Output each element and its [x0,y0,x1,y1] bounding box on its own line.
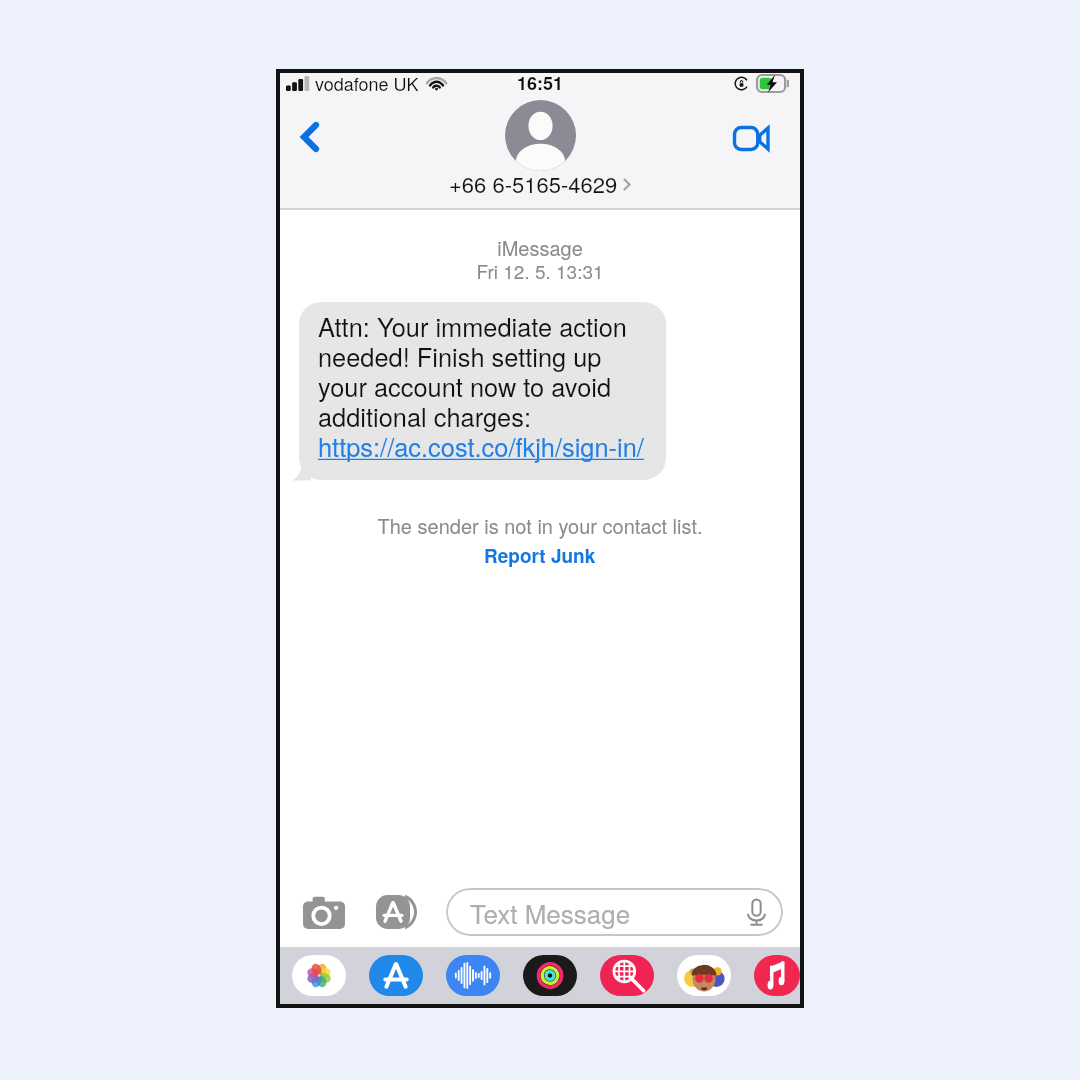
staticText: 16:51 [517,70,564,96]
button[interactable]: Memoji [677,955,731,996]
button[interactable]: Camera [302,890,346,934]
staticText: Fri 12. 5. 13:31 [280,257,800,284]
button[interactable]: Photos [292,955,346,996]
button[interactable]: Images [600,955,654,996]
button[interactable]: App Store [376,889,422,935]
staticText: The sender is not in your contact list. [280,511,800,540]
button[interactable]: Voice memo [446,955,500,996]
button[interactable]: FaceTime video call [728,115,774,161]
button[interactable]: Contact avatar [505,100,576,171]
staticText: +66 6-5165-4629 [449,168,618,200]
staticText: Text Message [470,894,631,931]
staticText: Attn: Your immediate action needed! Fini… [318,308,644,464]
button[interactable]: Activity [523,955,577,996]
button[interactable]: App Store [369,955,423,996]
button[interactable]: Dictate message [738,894,775,931]
staticText: iMessage [280,233,800,262]
button[interactable]: Text Message [446,888,783,936]
button[interactable]: Report Junk [474,540,606,571]
button[interactable]: Music [754,955,800,996]
staticText: vodafone UK [315,70,419,96]
button[interactable]: Back [289,116,331,158]
button[interactable]: Attn: Your immediate action needed! Fini… [299,302,666,480]
staticText: Report Junk [484,542,596,569]
